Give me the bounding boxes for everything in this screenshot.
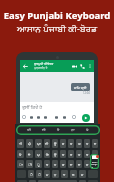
button[interactable]: ਝ: [92, 139, 98, 148]
staticText: ੂ: [37, 163, 40, 166]
button[interactable]: ਡ: [84, 160, 90, 168]
staticText: ੀ: [28, 163, 32, 166]
staticText: ਧ: [86, 142, 89, 145]
button[interactable]: ਆ: [35, 139, 42, 148]
staticText: ਉ: [54, 153, 57, 156]
button[interactable]: Attach: [35, 114, 41, 120]
button[interactable]: More options: [87, 63, 93, 69]
staticText: ਔ: [19, 142, 22, 145]
button[interactable]: ਙ: [68, 139, 74, 148]
button[interactable]: Attach: [28, 114, 34, 120]
button[interactable]: ਊ: [52, 139, 58, 148]
button[interactable]: ਼: [92, 160, 98, 168]
staticText: 12:04: [83, 91, 90, 95]
button[interactable]: .: [79, 180, 86, 182]
button[interactable]: ਈ: [44, 139, 50, 148]
staticText: ਰ: [70, 153, 73, 156]
staticText: ਊ: [54, 142, 57, 145]
button[interactable]: Call: [79, 63, 86, 70]
staticText: ਙ: [70, 142, 73, 145]
staticText: ਼: [94, 163, 97, 166]
staticText: ਗ: [62, 163, 65, 166]
staticText: Easy Punjabi Keyboard: [0, 9, 114, 22]
button[interactable]: ਬ: [44, 160, 50, 168]
staticText: ਹ: [54, 163, 57, 166]
staticText: ਡ: [86, 163, 89, 166]
staticText: ਗੁਰਮੁਖੀ ਕੀਬੋਰਡ: [34, 62, 54, 66]
button[interactable]: ਭ: [60, 139, 66, 148]
button[interactable]: ਮ: [44, 170, 50, 178]
staticText: ਫ: [62, 153, 65, 156]
button[interactable]: Microphone: [71, 114, 77, 120]
button[interactable]: ਘ: [76, 139, 82, 148]
staticText: ੈ: [30, 173, 33, 176]
button[interactable]: ੀ: [26, 160, 33, 168]
staticText: ਅ: [37, 153, 40, 156]
staticText: ਬ: [46, 163, 49, 166]
button[interactable]: ਅ: [35, 150, 42, 158]
staticText: ਈ: [45, 142, 49, 145]
staticText: ਏ: [28, 153, 31, 156]
staticText: PUNJABI: [91, 163, 98, 168]
button[interactable]: ੈ: [28, 170, 34, 178]
button[interactable]: ਜ: [76, 160, 82, 168]
button[interactable]: ਔ: [17, 139, 24, 148]
button[interactable]: ਇ: [44, 150, 50, 158]
button[interactable]: ੋ: [36, 170, 42, 178]
staticText: ਜ: [78, 163, 81, 166]
staticText: ਮ: [46, 173, 49, 176]
button[interactable]: ਖ: [76, 150, 82, 158]
staticText: ਦ: [70, 163, 73, 166]
button[interactable]: ਧ: [84, 139, 90, 148]
button[interactable]: Attach: [53, 114, 59, 120]
button[interactable]: ਰ: [68, 150, 74, 158]
staticText: ਾ: [19, 163, 23, 166]
button[interactable]: ਉ: [52, 150, 58, 158]
button[interactable]: Back: [21, 62, 29, 70]
button[interactable]: ਐ: [26, 139, 33, 148]
button[interactable]: ਓ: [17, 150, 24, 158]
button[interactable]: ਸ: [79, 170, 86, 178]
staticText: ਕੀ: [27, 128, 31, 132]
button[interactable]: Attach: [42, 114, 48, 120]
button[interactable]: ਵ: [61, 170, 68, 178]
staticText: EASY: [92, 160, 98, 163]
button[interactable]: ਦ: [68, 160, 74, 168]
button[interactable]: ਛ: [92, 150, 98, 158]
button[interactable]: ਨ: [52, 170, 59, 178]
button[interactable]: ਹ: [52, 160, 58, 168]
button[interactable]: Easy Punjabi Keyboard app icon: [90, 154, 99, 169]
button[interactable]: ਥ: [84, 150, 90, 158]
staticText: ਥ: [86, 153, 89, 156]
button[interactable]: ੂ: [35, 160, 42, 168]
button[interactable]: ਸਤਿ ਸ੍ਰੀ: [71, 83, 90, 91]
staticText: ਝ: [94, 142, 97, 145]
staticText: ਘ: [78, 142, 81, 145]
staticText: ਇ: [46, 153, 49, 156]
button[interactable]: Video call: [71, 63, 78, 70]
button[interactable]: ਾ: [17, 160, 24, 168]
staticText: ਨ: [54, 173, 57, 176]
staticText: ਵ: [63, 173, 66, 176]
button[interactable]: ,: [29, 180, 36, 182]
button[interactable]: ਏ: [26, 150, 33, 158]
button[interactable]: ਗ: [60, 160, 66, 168]
staticText: ਖ: [78, 153, 81, 156]
staticText: ਸਤਿ ਸ੍ਰੀ: [74, 85, 87, 90]
staticText: ਭ: [62, 142, 65, 145]
button[interactable]: ਫ: [60, 150, 66, 158]
staticText: ਆਸਾਨ ਪੰਜਾਬੀ ਕੀ-ਬੋਰਡ: [0, 22, 114, 34]
staticText: ਜੀ: [42, 128, 46, 132]
staticText: ਨਾ: [71, 128, 75, 132]
staticText: ਐ: [28, 142, 31, 145]
button[interactable]: Attach: [61, 114, 67, 120]
button[interactable]: ਲ: [70, 170, 77, 178]
button[interactable]: Emoji: [21, 114, 27, 120]
button[interactable]: Send: [82, 114, 90, 122]
staticText: ਹੈ: [57, 128, 60, 132]
